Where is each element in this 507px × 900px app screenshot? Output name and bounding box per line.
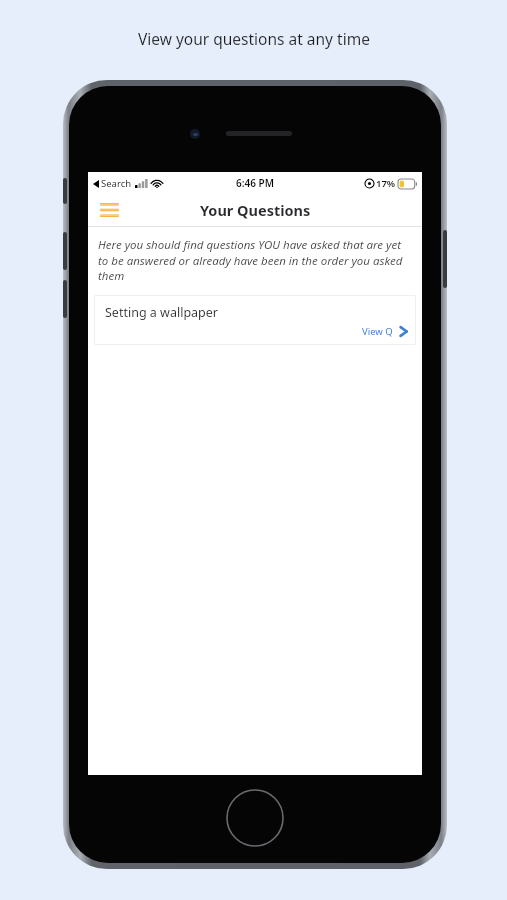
staticText: Search [101, 177, 132, 190]
staticText: Here you should find questions YOU have … [98, 237, 410, 283]
button[interactable]: Open navigation menu [95, 197, 123, 223]
staticText: View Q [362, 325, 393, 338]
button[interactable]: Setting a wallpaper [94, 295, 416, 345]
staticText: 6:46 PM [236, 176, 274, 190]
staticText: 17% [376, 177, 396, 190]
staticText: View your questions at any time [138, 28, 370, 49]
staticText: Your Questions [200, 200, 311, 220]
staticText: Setting a wallpaper [105, 304, 218, 321]
other: Home [225, 788, 285, 848]
